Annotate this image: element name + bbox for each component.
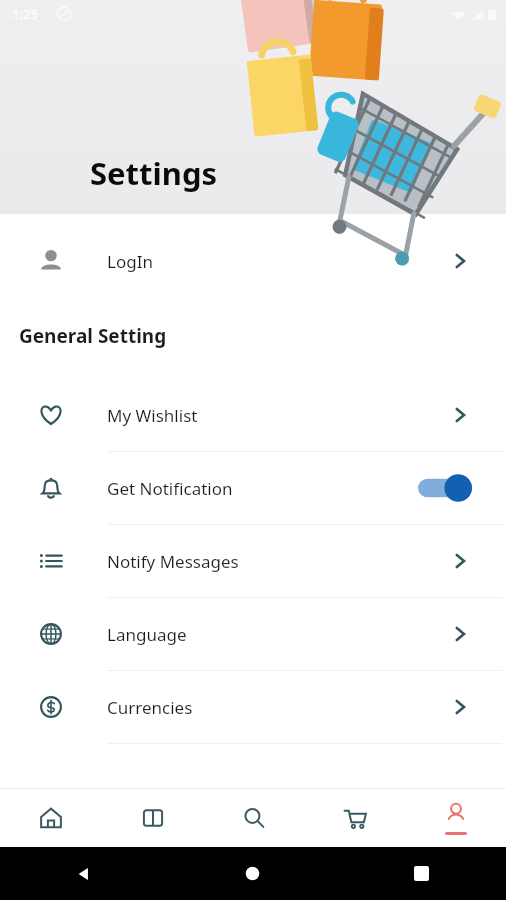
staticText: Currencies — [107, 696, 193, 719]
button[interactable]: Notify Messages — [0, 525, 506, 597]
other: Open My Wishlist — [450, 405, 470, 425]
staticText: Get Notification — [107, 477, 233, 500]
other: Back — [75, 865, 93, 883]
button[interactable]: My Wishlist — [0, 379, 506, 451]
other: Open Language — [450, 624, 470, 644]
button[interactable]: Profile — [405, 789, 506, 847]
staticText: Settings — [90, 152, 218, 194]
staticText: Language — [107, 623, 187, 646]
staticText: LogIn — [107, 250, 153, 273]
staticText: General Setting — [19, 323, 167, 349]
button[interactable]: Categories — [102, 789, 203, 847]
other: Open Currencies — [450, 697, 470, 717]
button[interactable]: Home — [0, 789, 102, 847]
staticText: My Wishlist — [107, 404, 198, 427]
button[interactable]: Toggle Get Notification — [418, 473, 472, 503]
button[interactable]: Currencies — [0, 671, 506, 743]
staticText: Notify Messages — [107, 550, 239, 573]
button[interactable]: LogIn — [0, 225, 506, 297]
other: Open LogIn — [450, 251, 470, 271]
other: Open Notify Messages — [450, 551, 470, 571]
button[interactable]: Cart — [304, 789, 405, 847]
button[interactable]: Search — [203, 789, 304, 847]
other: Home — [244, 865, 261, 882]
button[interactable]: Language — [0, 598, 506, 670]
button[interactable]: Get Notification — [0, 452, 506, 524]
staticText: 1:25 — [12, 5, 38, 23]
other: Recents — [414, 866, 429, 881]
